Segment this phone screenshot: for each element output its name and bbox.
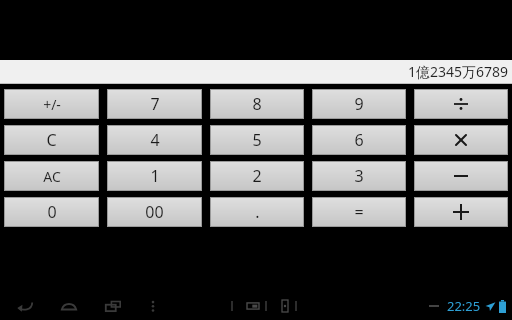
- button[interactable]: AC: [4, 161, 99, 191]
- staticText: 4: [150, 129, 160, 151]
- staticText: =: [354, 201, 364, 223]
- button[interactable]: 2: [210, 161, 304, 191]
- button[interactable]: Back: [12, 293, 38, 319]
- button[interactable]: 9: [312, 89, 406, 119]
- button[interactable]: [414, 125, 508, 155]
- staticText: 22:25: [447, 297, 481, 315]
- staticText: 0: [47, 201, 57, 223]
- button[interactable]: =: [312, 197, 406, 227]
- staticText: .: [255, 201, 260, 223]
- button[interactable]: +/-: [4, 89, 99, 119]
- button[interactable]: 7: [107, 89, 202, 119]
- staticText: 1億2345万6789: [407, 62, 508, 81]
- button[interactable]: Home: [56, 293, 82, 319]
- button[interactable]: 00: [107, 197, 202, 227]
- staticText: 7: [150, 93, 160, 115]
- button[interactable]: [414, 161, 508, 191]
- button[interactable]: 0: [4, 197, 99, 227]
- button[interactable]: .: [210, 197, 304, 227]
- staticText: C: [46, 129, 57, 151]
- staticText: 8: [252, 93, 262, 115]
- staticText: 9: [354, 93, 364, 115]
- button[interactable]: Recent apps: [100, 293, 126, 319]
- button[interactable]: More options: [142, 295, 164, 317]
- button[interactable]: C: [4, 125, 99, 155]
- button[interactable]: 8: [210, 89, 304, 119]
- button[interactable]: 4: [107, 125, 202, 155]
- staticText: AC: [43, 167, 61, 186]
- button[interactable]: 6: [312, 125, 406, 155]
- staticText: 5: [252, 129, 262, 151]
- button[interactable]: [414, 197, 508, 227]
- staticText: 3: [354, 165, 364, 187]
- staticText: 00: [145, 201, 164, 223]
- button[interactable]: 5: [210, 125, 304, 155]
- button[interactable]: 3: [312, 161, 406, 191]
- button[interactable]: [414, 89, 508, 119]
- staticText: 6: [354, 129, 364, 151]
- staticText: +/-: [43, 95, 61, 114]
- button[interactable]: 1: [107, 161, 202, 191]
- staticText: 2: [252, 165, 262, 187]
- staticText: 1: [150, 165, 160, 187]
